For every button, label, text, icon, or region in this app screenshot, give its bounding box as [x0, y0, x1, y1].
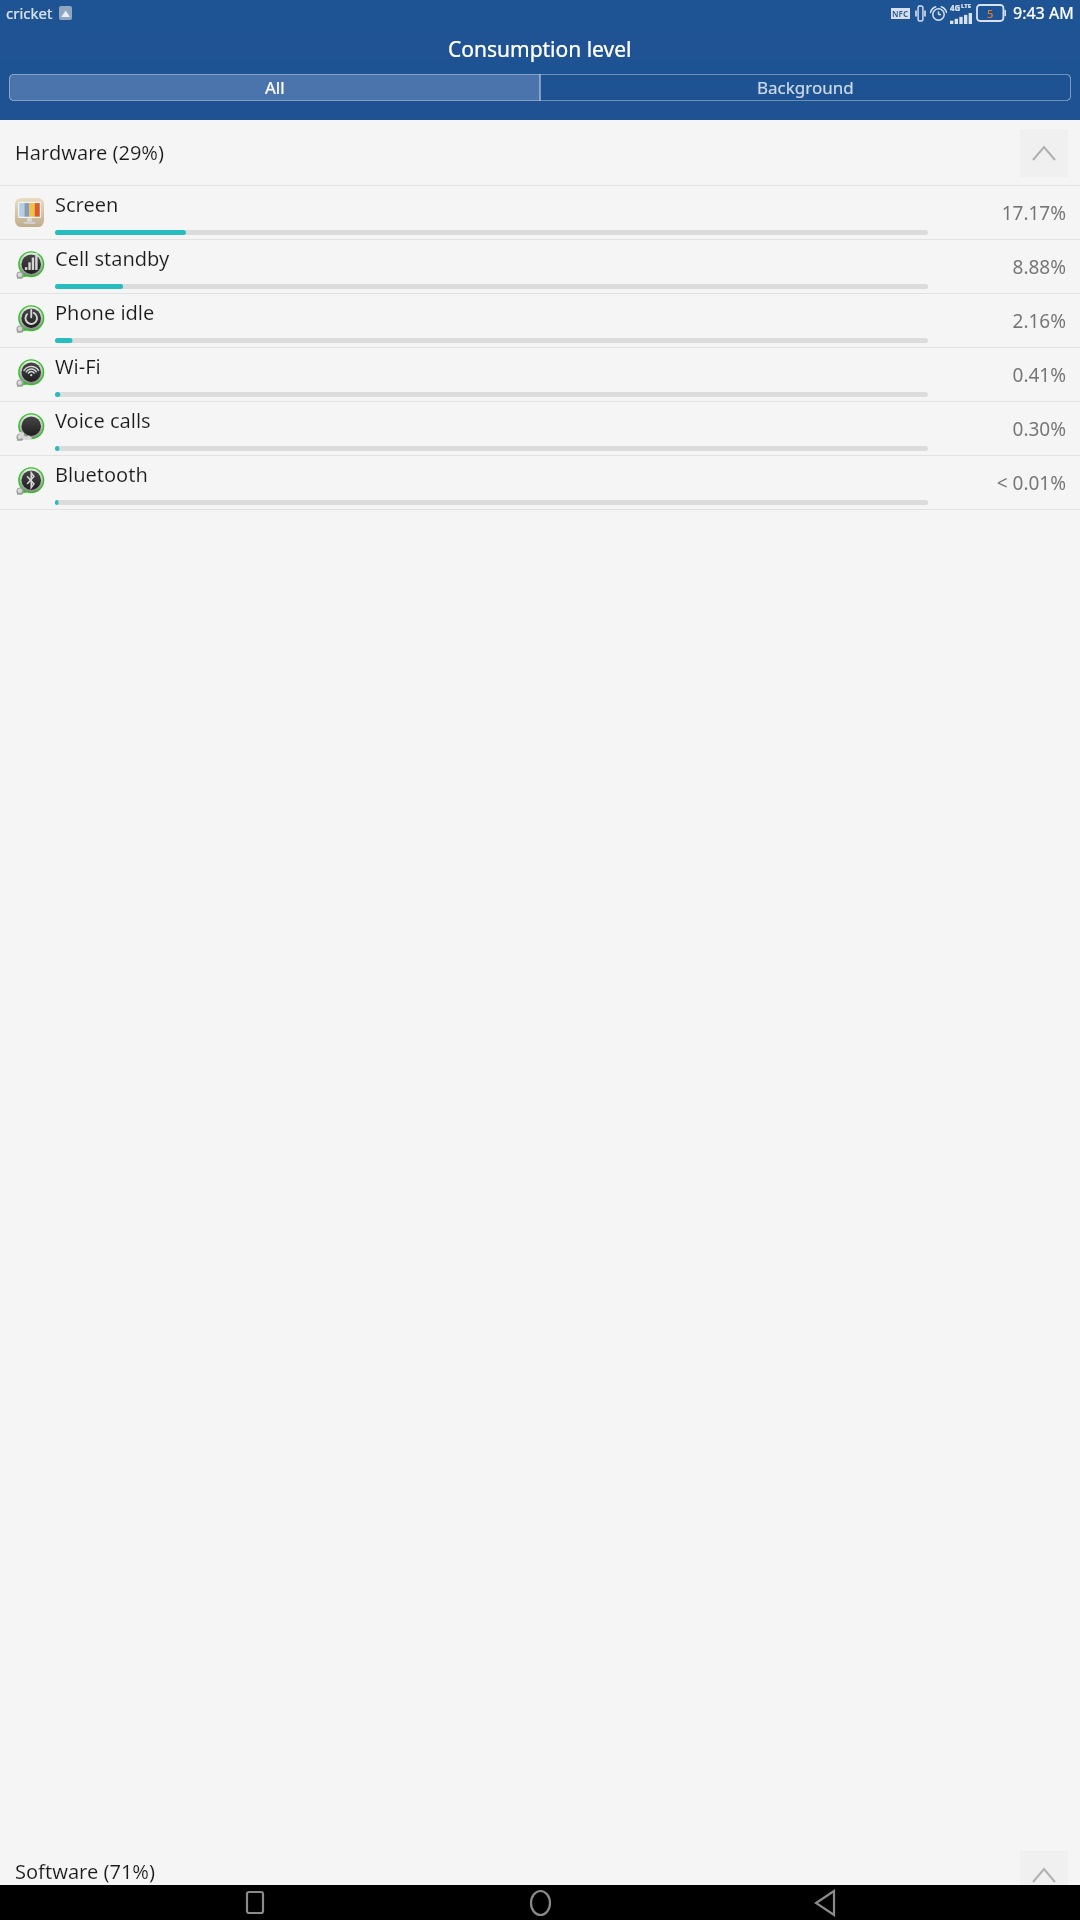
staticText: Software (71%) [15, 1858, 155, 1885]
button[interactable]: Back [795, 1885, 855, 1920]
button[interactable]: Software (71%) [0, 510, 1080, 1885]
staticText: 0.30% [1012, 416, 1066, 442]
button[interactable]: Screen [0, 186, 1080, 239]
button[interactable]: Voice calls [0, 402, 1080, 455]
staticText: Consumption level [448, 35, 632, 64]
other: Collapse Hardware section [1020, 129, 1068, 177]
staticText: 0.41% [1012, 362, 1066, 388]
staticText: 2.16% [1012, 308, 1066, 334]
staticText: Hardware (29%) [15, 139, 164, 166]
staticText: 9:43 AM [1013, 2, 1074, 24]
staticText: 8.88% [1012, 254, 1066, 280]
button[interactable]: Hardware (29%) [0, 120, 1080, 185]
staticText: Phone idle [55, 299, 155, 326]
staticText: Voice calls [55, 407, 151, 434]
staticText: 17.17% [1001, 200, 1066, 226]
button[interactable]: Background [540, 74, 1071, 101]
staticText: All [265, 76, 285, 99]
staticText: LTE [961, 2, 972, 10]
staticText: Cell standby [55, 245, 170, 272]
button[interactable]: Phone idle [0, 294, 1080, 347]
button[interactable]: Cell standby [0, 240, 1080, 293]
staticText: Wi-Fi [55, 353, 101, 380]
staticText: 4G [950, 2, 961, 13]
other: Collapse Software section [1020, 1851, 1068, 1899]
button[interactable]: Wi-Fi [0, 348, 1080, 401]
button[interactable]: Home [510, 1885, 570, 1920]
button[interactable]: Recent apps [225, 1885, 285, 1920]
staticText: Bluetooth [55, 461, 148, 488]
staticText: < 0.01% [996, 470, 1066, 496]
staticText: Screen [55, 191, 119, 218]
staticText: 5 [987, 6, 994, 21]
staticText: cricket [6, 3, 53, 23]
button[interactable]: Bluetooth [0, 456, 1080, 509]
staticText: NFC [892, 8, 909, 19]
staticText: Background [757, 76, 854, 99]
button[interactable]: All [9, 74, 540, 101]
